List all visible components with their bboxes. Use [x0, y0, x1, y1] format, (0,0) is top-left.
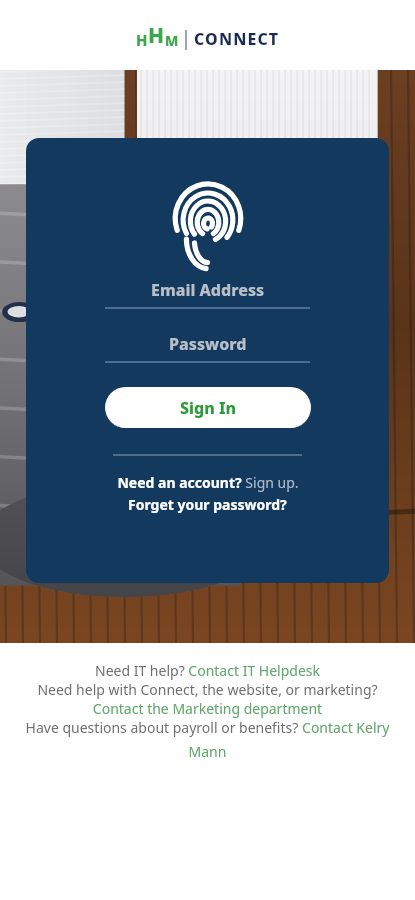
button[interactable]: Sign In — [105, 387, 311, 428]
staticText: Password — [169, 333, 247, 355]
other: Fingerprint sign in — [172, 179, 244, 255]
button[interactable]: Contact the Marketing department — [8, 699, 407, 718]
staticText: Email Address — [151, 279, 265, 301]
button[interactable]: Need an account? Sign up. — [117, 473, 299, 492]
button[interactable]: Have questions about payroll or benefits… — [8, 718, 407, 761]
button[interactable]: Email Address — [105, 277, 310, 309]
staticText: Sign In — [180, 397, 237, 419]
staticText: Need an account? Sign up. — [117, 473, 299, 492]
staticText: H — [136, 30, 148, 50]
staticText: Forget your password? — [128, 495, 287, 514]
staticText: M — [165, 31, 179, 50]
button[interactable]: Need IT help? Contact IT Helpdesk — [8, 661, 407, 680]
button[interactable]: Password — [105, 331, 310, 363]
staticText: H — [148, 21, 165, 50]
button[interactable]: Need help with Connect, the website, or … — [8, 680, 407, 699]
staticText: Contact the Marketing department — [8, 699, 407, 718]
staticText: Need IT help? Contact IT Helpdesk — [8, 661, 407, 680]
button[interactable]: Forget your password? — [128, 495, 287, 514]
staticText: CONNECT — [194, 28, 280, 50]
staticText: Need help with Connect, the website, or … — [8, 680, 407, 699]
staticText: Have questions about payroll or benefits… — [8, 718, 407, 761]
